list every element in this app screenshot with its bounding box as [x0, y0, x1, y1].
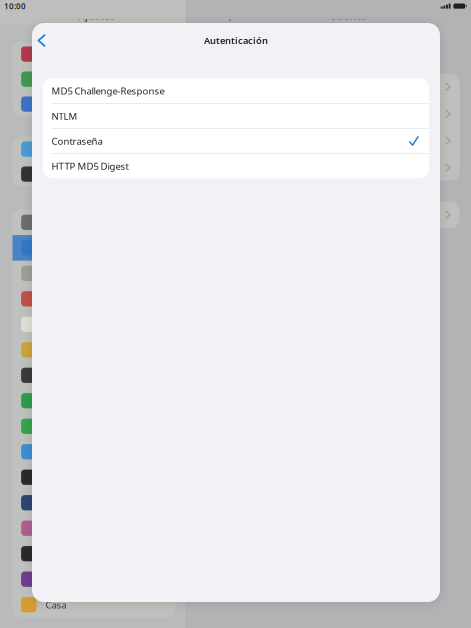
button[interactable]: MD5 Challenge-Response: [43, 79, 429, 104]
staticText: MD5 Challenge-Response: [51, 84, 164, 97]
button[interactable]: HTTP MD5 Digest: [43, 154, 429, 178]
button[interactable]: [12, 515, 175, 541]
button[interactable]: [12, 286, 175, 312]
staticText: Cuenta: [329, 8, 366, 22]
button[interactable]: [12, 388, 175, 413]
button[interactable]: [12, 162, 175, 187]
button[interactable]: Contraseña: [43, 129, 429, 154]
button[interactable]: [12, 235, 175, 261]
staticText: HTTP MD5 Digest: [51, 160, 128, 173]
button[interactable]: [12, 312, 175, 337]
button[interactable]: [12, 566, 175, 592]
button[interactable]: [12, 413, 175, 439]
button[interactable]: [12, 362, 175, 388]
staticText: 10:00: [4, 1, 26, 12]
button[interactable]: [12, 42, 175, 67]
staticText: NTLM: [51, 109, 77, 122]
button[interactable]: NTLM: [43, 104, 429, 129]
button[interactable]: [12, 337, 175, 362]
button[interactable]: [12, 210, 175, 235]
button[interactable]: [12, 439, 175, 464]
button[interactable]: [12, 137, 175, 162]
button[interactable]: [12, 464, 175, 490]
button[interactable]: [12, 92, 175, 117]
staticText: Ajustes: [223, 9, 255, 22]
staticText: Ajustes: [78, 8, 115, 22]
button[interactable]: [12, 67, 175, 92]
staticText: Casa: [45, 598, 66, 611]
staticText: Autenticación: [204, 34, 268, 47]
button[interactable]: [12, 490, 175, 515]
button[interactable]: Casa: [12, 592, 175, 617]
staticText: Contraseña: [51, 134, 102, 148]
button[interactable]: [12, 261, 175, 286]
button[interactable]: [12, 541, 175, 566]
button[interactable]: Atrás: [32, 26, 58, 54]
